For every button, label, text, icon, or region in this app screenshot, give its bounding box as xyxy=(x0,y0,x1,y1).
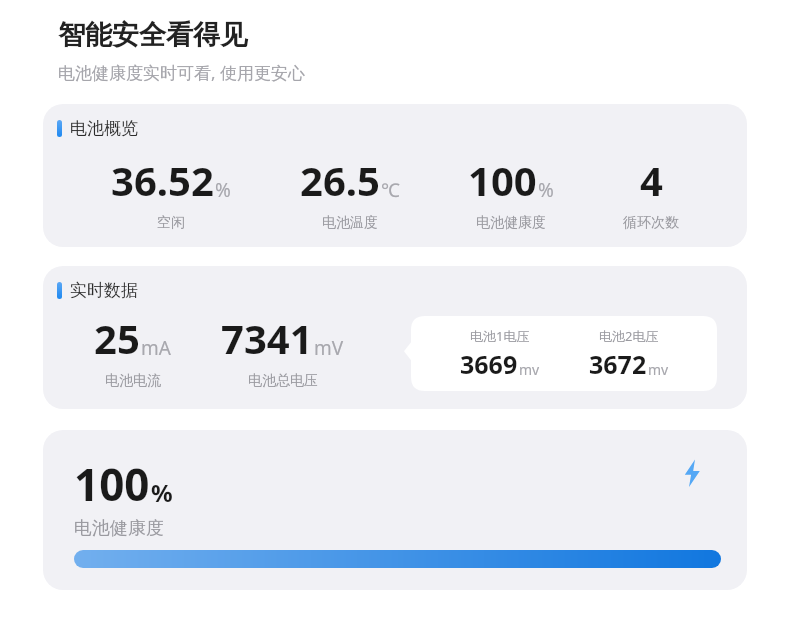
staticText: 智能安全看得见 xyxy=(58,18,247,52)
staticText: 电池健康度 xyxy=(476,214,546,232)
staticText: 36.52 xyxy=(111,153,214,207)
staticText: 循环次数 xyxy=(623,214,679,232)
staticText: 实时数据 xyxy=(70,280,138,301)
staticText: 7341 xyxy=(221,311,313,365)
button[interactable]: 实时数据 xyxy=(43,266,747,409)
staticText: mA xyxy=(141,335,171,361)
staticText: % xyxy=(215,177,231,203)
staticText: 26.5 xyxy=(300,153,380,207)
staticText: % xyxy=(538,177,554,203)
staticText: 3669 xyxy=(460,347,518,381)
staticText: 电池概览 xyxy=(70,118,138,139)
staticText: 电池总电压 xyxy=(248,372,318,390)
staticText: 电池电流 xyxy=(105,372,161,390)
staticText: 电池1电压 xyxy=(470,327,530,345)
staticText: mv xyxy=(648,360,669,379)
staticText: 4 xyxy=(640,153,663,207)
staticText: % xyxy=(151,476,173,509)
staticText: mv xyxy=(519,360,540,379)
button[interactable]: Charging xyxy=(677,458,707,488)
staticText: 电池2电压 xyxy=(599,327,659,345)
staticText: 25 xyxy=(94,311,140,365)
staticText: 100 xyxy=(74,454,150,514)
staticText: 空闲 xyxy=(157,214,185,232)
staticText: 电池健康度 xyxy=(74,517,164,540)
staticText: ℃ xyxy=(381,177,400,203)
button[interactable]: 电池概览 xyxy=(43,104,747,247)
staticText: 电池健康度实时可看, 使用更安心 xyxy=(58,61,305,84)
button[interactable]: 100 xyxy=(43,430,747,590)
staticText: mV xyxy=(314,335,344,361)
staticText: 100 xyxy=(468,153,537,207)
staticText: 3672 xyxy=(589,347,647,381)
staticText: 电池温度 xyxy=(322,214,378,232)
